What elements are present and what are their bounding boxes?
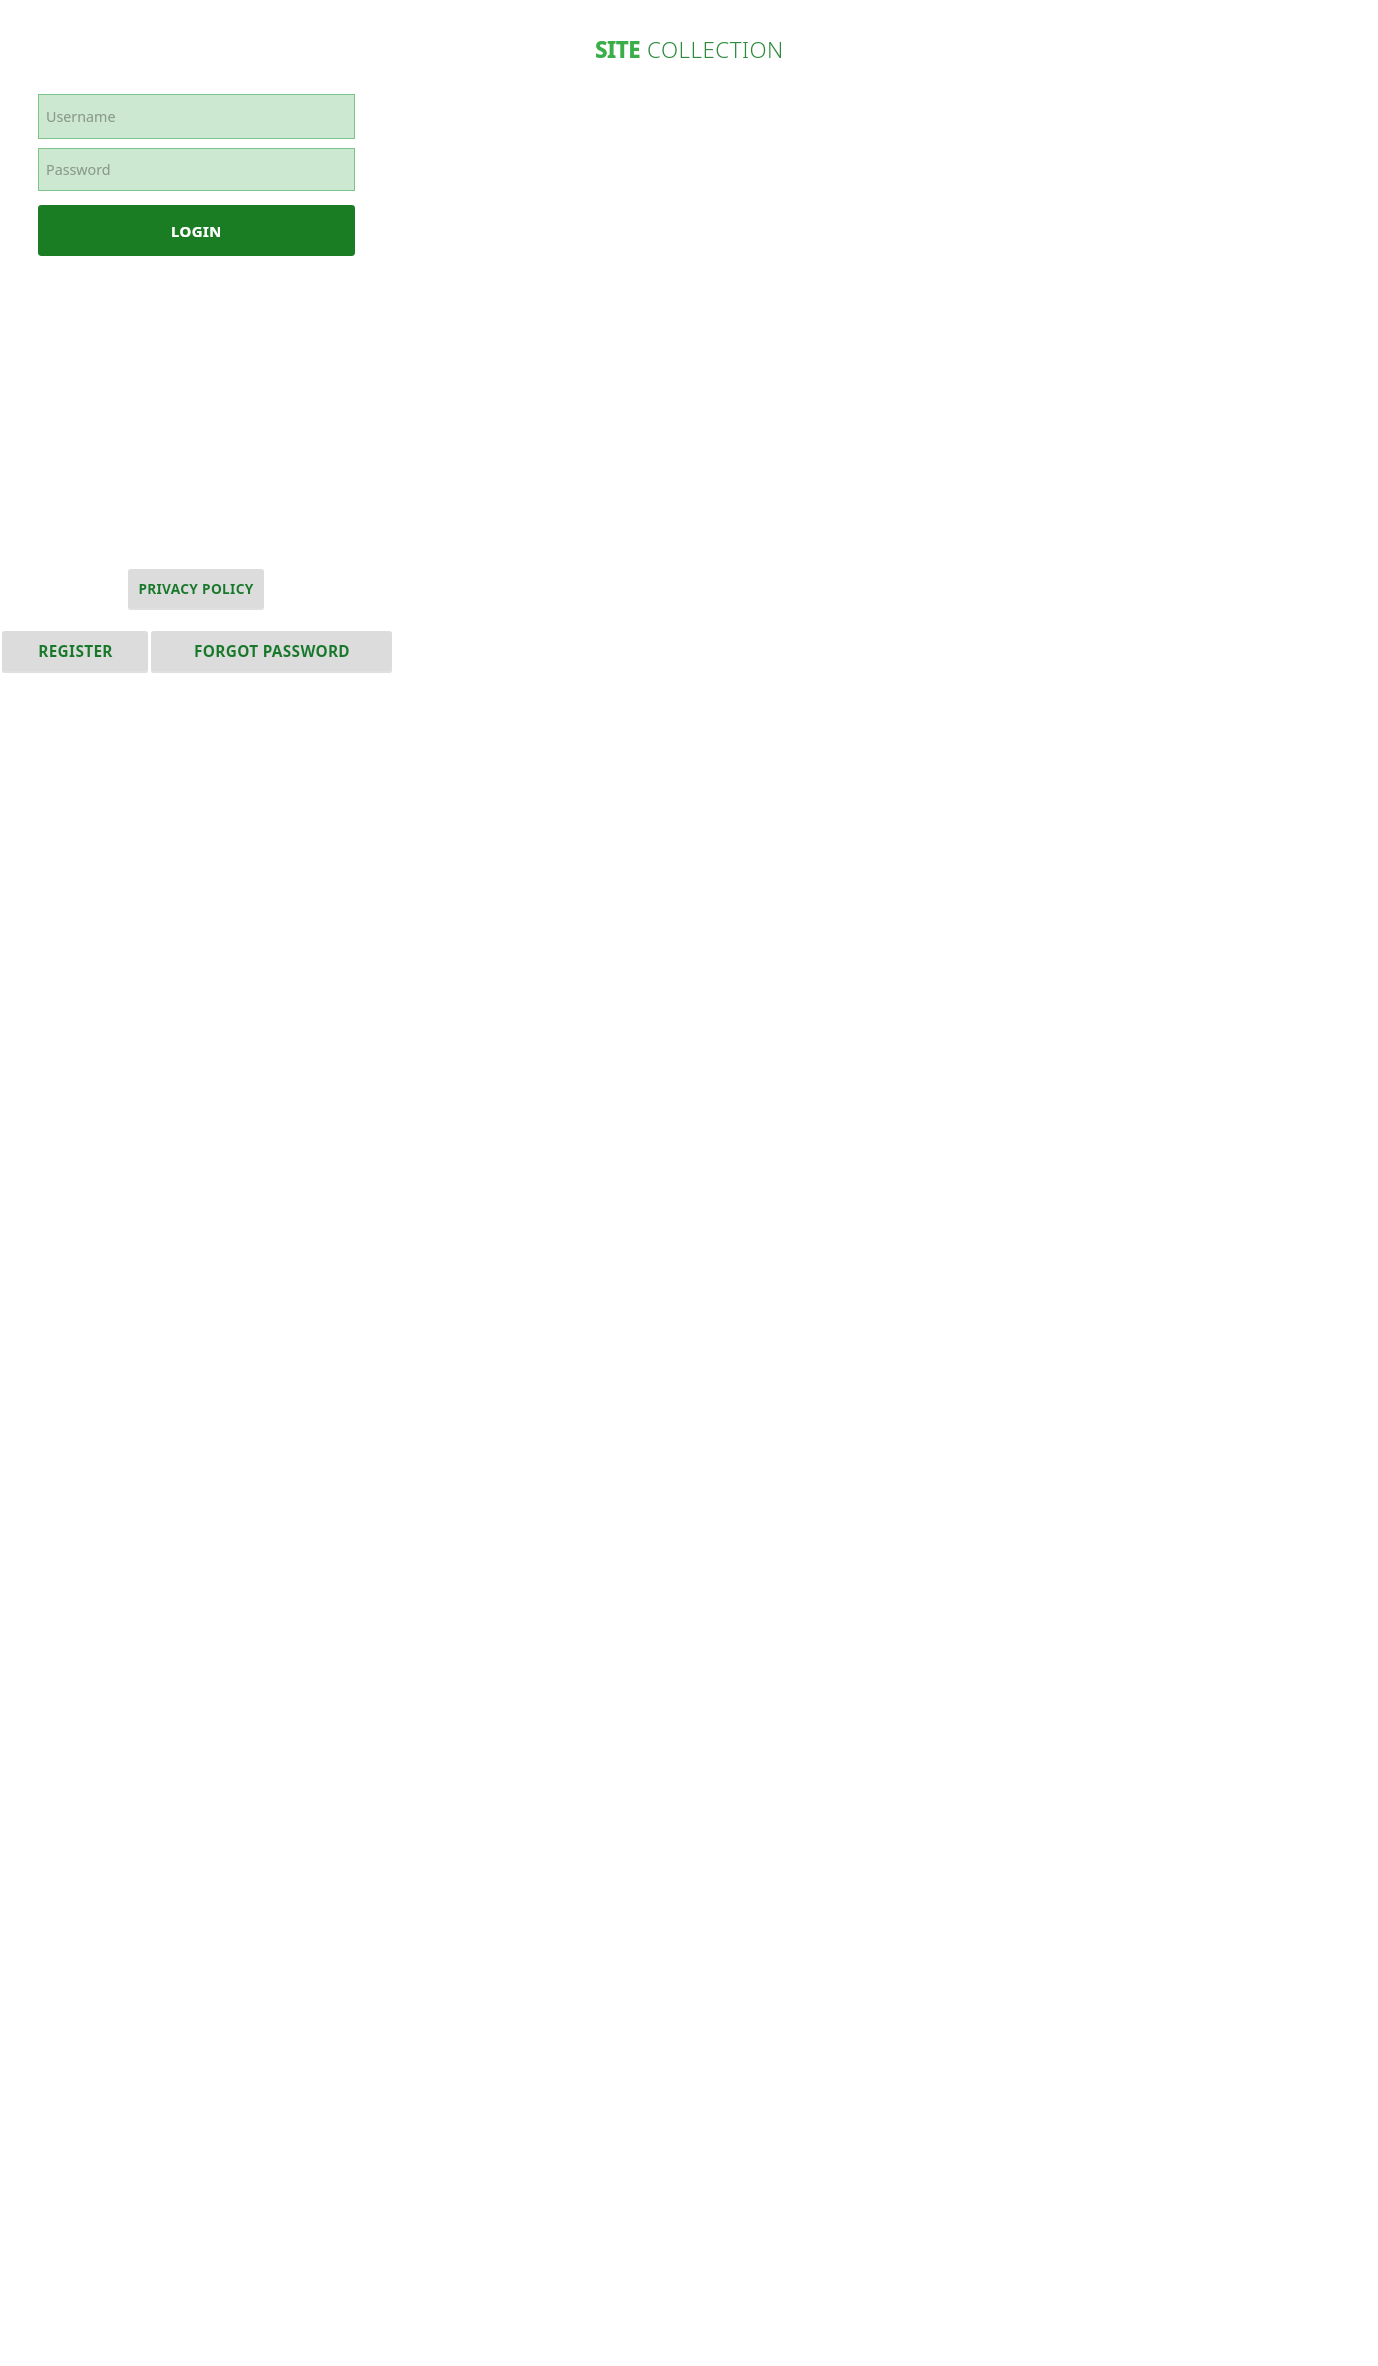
button[interactable]: FORGOT PASSWORD xyxy=(151,631,392,671)
button[interactable]: Password xyxy=(38,148,355,191)
staticText: LOGIN xyxy=(171,221,222,241)
staticText: REGISTER xyxy=(38,641,113,662)
staticText: Username xyxy=(46,107,116,126)
button[interactable]: PRIVACY POLICY xyxy=(128,569,264,608)
button[interactable]: LOGIN xyxy=(38,205,355,256)
button[interactable]: Username xyxy=(38,94,355,139)
staticText: SITE xyxy=(595,34,641,64)
staticText: COLLECTION xyxy=(647,34,784,64)
staticText: PRIVACY POLICY xyxy=(138,579,254,598)
staticText: Password xyxy=(46,160,111,179)
button[interactable]: REGISTER xyxy=(2,631,148,671)
staticText: FORGOT PASSWORD xyxy=(194,641,350,662)
